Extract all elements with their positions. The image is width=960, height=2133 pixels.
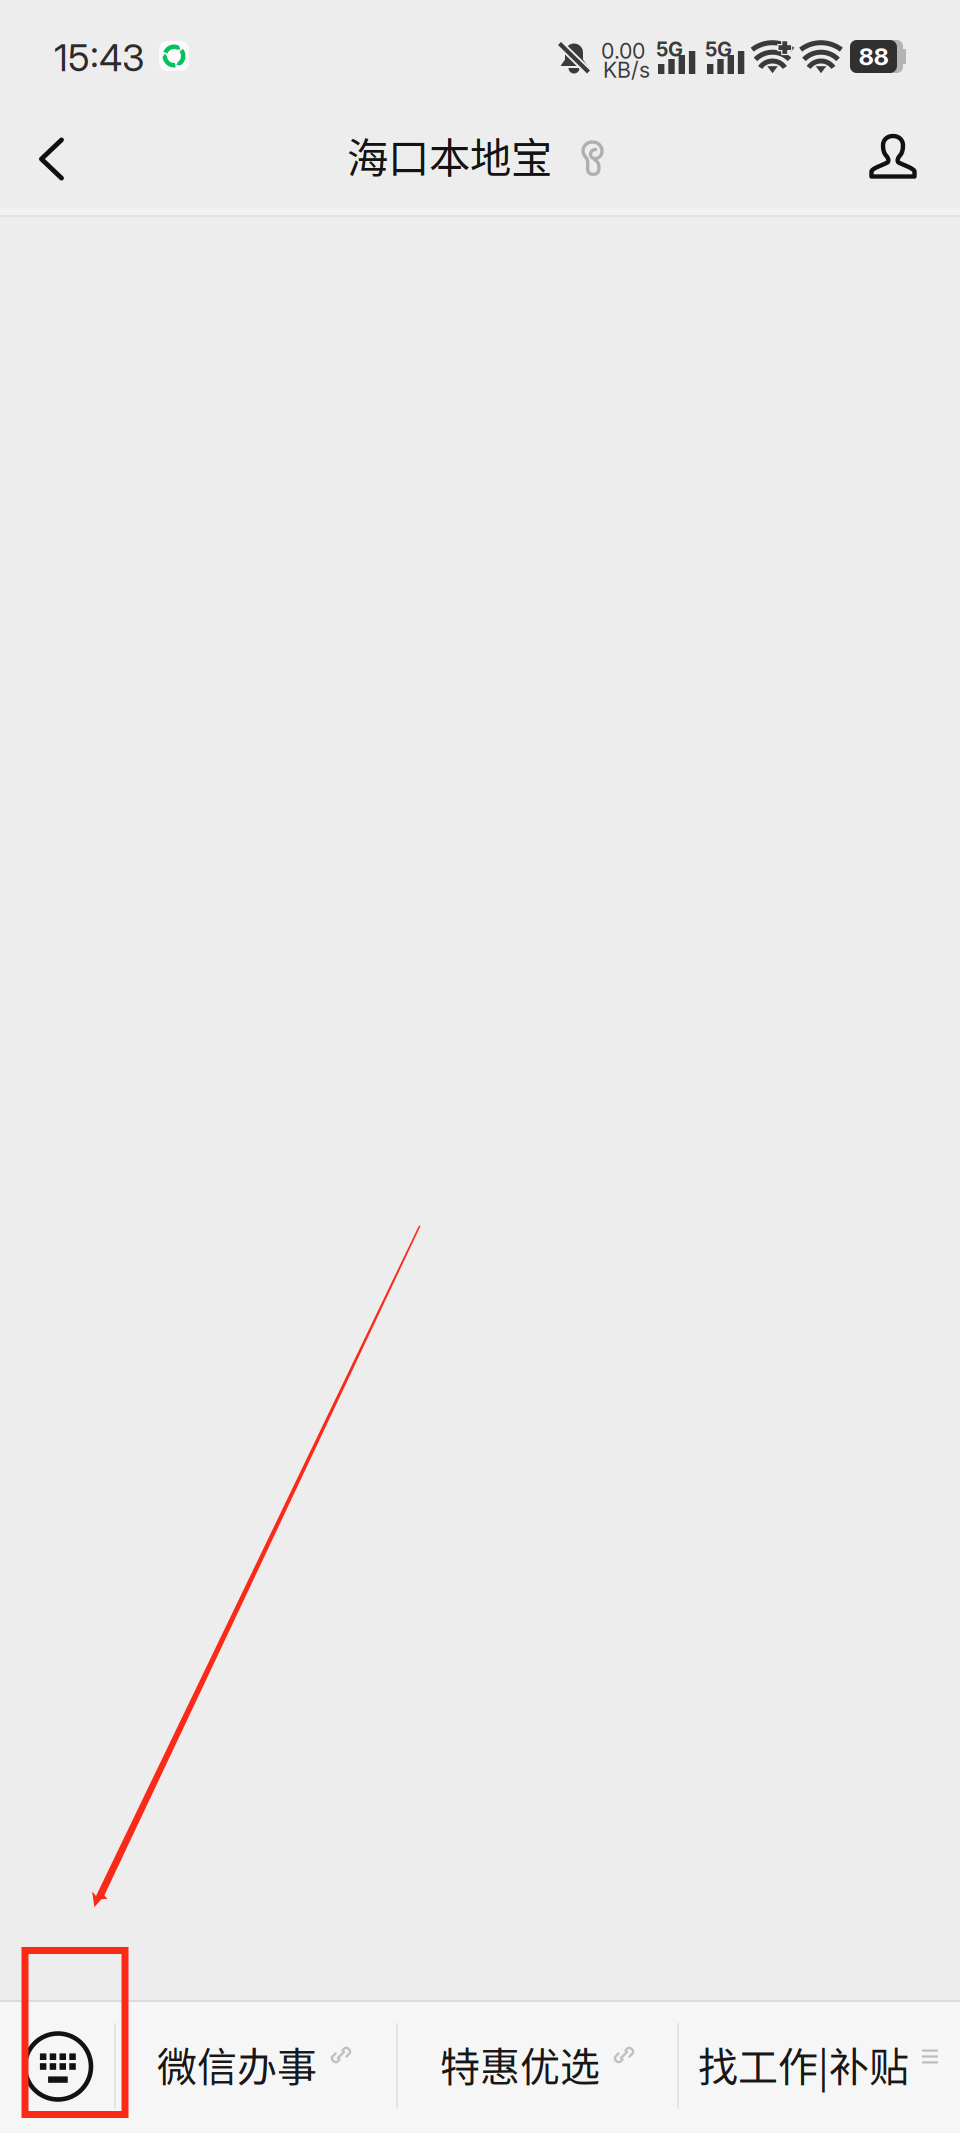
- staticText: 15:43: [54, 35, 145, 80]
- staticText: 0.00: [601, 38, 645, 64]
- staticText: 5G: [656, 37, 683, 61]
- button[interactable]: Back: [16, 104, 91, 208]
- staticText: 88: [858, 42, 888, 71]
- button[interactable]: 找工作|补贴: [698, 2000, 948, 2133]
- staticText: 微信办事: [157, 2035, 317, 2093]
- staticText: KB/s: [603, 57, 650, 83]
- staticText: 找工作|补贴: [698, 2035, 909, 2093]
- staticText: 5G: [705, 37, 732, 61]
- button[interactable]: 微信办事: [157, 2000, 357, 2133]
- button[interactable]: 特惠优选: [440, 2000, 640, 2133]
- button[interactable]: Profile: [847, 104, 939, 208]
- staticText: 海口本地宝: [347, 125, 552, 185]
- staticText: 特惠优选: [440, 2035, 600, 2093]
- button[interactable]: Keyboard: [0, 2000, 113, 2133]
